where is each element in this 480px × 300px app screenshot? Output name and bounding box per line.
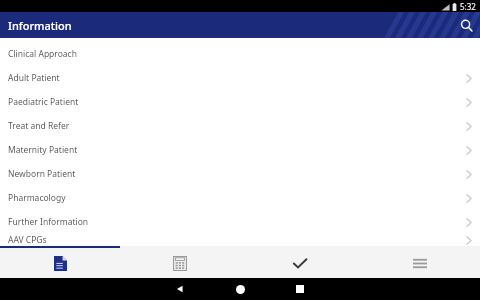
staticText: Paediatric Patient	[8, 96, 79, 108]
button[interactable]: Adult Patient	[0, 66, 480, 90]
button[interactable]: Menu	[360, 248, 480, 278]
staticText: Clinical Approach	[8, 48, 77, 60]
button[interactable]: Clinical Approach	[0, 42, 480, 66]
staticText: Treat and Refer	[8, 120, 70, 132]
button[interactable]: Maternity Patient	[0, 138, 480, 162]
button[interactable]: Paediatric Patient	[0, 90, 480, 114]
button[interactable]: Recent apps	[270, 278, 330, 300]
staticText: AAV CPGs	[8, 234, 47, 246]
button[interactable]: Documents	[0, 248, 120, 278]
button[interactable]: Newborn Patient	[0, 162, 480, 186]
staticText: Pharmacology	[8, 192, 66, 204]
button[interactable]: Treat and Refer	[0, 114, 480, 138]
staticText: Newborn Patient	[8, 168, 76, 180]
button[interactable]: Calculators	[120, 248, 240, 278]
staticText: Further Information	[8, 216, 89, 228]
staticText: 5:32	[460, 1, 476, 12]
button[interactable]: AAV CPGs	[0, 234, 480, 246]
button[interactable]: Back	[150, 278, 210, 300]
button[interactable]: Further Information	[0, 210, 480, 234]
button[interactable]: Checklists	[240, 248, 360, 278]
button[interactable]: Home	[210, 278, 270, 300]
staticText: Maternity Patient	[8, 144, 78, 156]
button[interactable]: Pharmacology	[0, 186, 480, 210]
button[interactable]: Search	[454, 13, 478, 37]
staticText: Information	[8, 18, 72, 33]
staticText: Adult Patient	[8, 72, 60, 84]
